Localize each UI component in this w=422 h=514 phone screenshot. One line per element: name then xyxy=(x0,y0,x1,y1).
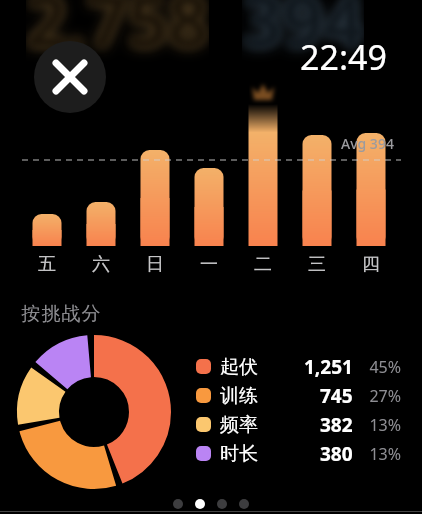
staticText: 382 xyxy=(320,412,353,438)
staticText: 13% xyxy=(353,443,401,465)
staticText: 394 xyxy=(242,0,364,68)
staticText: 六 xyxy=(87,253,115,276)
staticText: 五 xyxy=(33,253,61,276)
staticText: 时长 xyxy=(220,442,258,466)
staticText: Avg 394 xyxy=(341,134,394,153)
button[interactable]: 频率 xyxy=(196,410,401,439)
staticText: 训练 xyxy=(220,384,258,408)
button[interactable]: 训练 xyxy=(196,381,401,410)
button[interactable] xyxy=(34,41,106,113)
staticText: 2,758 xyxy=(26,0,209,68)
staticText: 起伏 xyxy=(220,355,258,379)
staticText: 745 xyxy=(320,383,353,409)
staticText: 27% xyxy=(353,385,401,407)
staticText: 四 xyxy=(357,253,385,276)
staticText: 日 xyxy=(141,253,169,276)
staticText: 394 xyxy=(242,0,364,68)
staticText: 380 xyxy=(320,441,353,467)
staticText: 22:49 xyxy=(300,34,387,80)
staticText: 一 xyxy=(195,253,223,276)
staticText: 1,251 xyxy=(304,354,353,380)
staticText: 频率 xyxy=(220,413,258,437)
staticText: 45% xyxy=(353,356,401,378)
staticText: 二 xyxy=(249,253,277,276)
staticText: 三 xyxy=(303,253,331,276)
staticText: 2,758 xyxy=(26,0,209,68)
staticText: 13% xyxy=(353,414,401,436)
button[interactable]: 时长 xyxy=(196,439,401,468)
staticText: 按挑战分 xyxy=(21,302,101,326)
button[interactable]: 起伏 xyxy=(196,352,401,381)
